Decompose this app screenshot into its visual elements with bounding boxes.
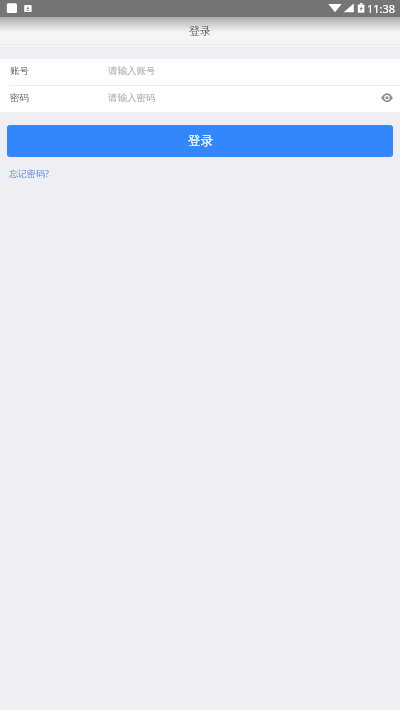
staticText: 登录 (188, 133, 213, 149)
button[interactable]: 账号 (0, 59, 400, 85)
staticText: 11:38 (367, 1, 396, 16)
button[interactable]: Show password (376, 88, 398, 110)
button[interactable]: 忘记密码? (9, 167, 49, 179)
staticText: 登录 (0, 24, 400, 38)
staticText: 忘记密码? (9, 167, 49, 179)
button[interactable]: 密码 (0, 86, 400, 112)
staticText: 请输入账号 (108, 65, 156, 77)
staticText: 账号 (10, 65, 29, 77)
button[interactable]: 登录 (7, 125, 393, 157)
staticText: 请输入密码 (108, 92, 156, 104)
staticText: 密码 (10, 92, 29, 104)
